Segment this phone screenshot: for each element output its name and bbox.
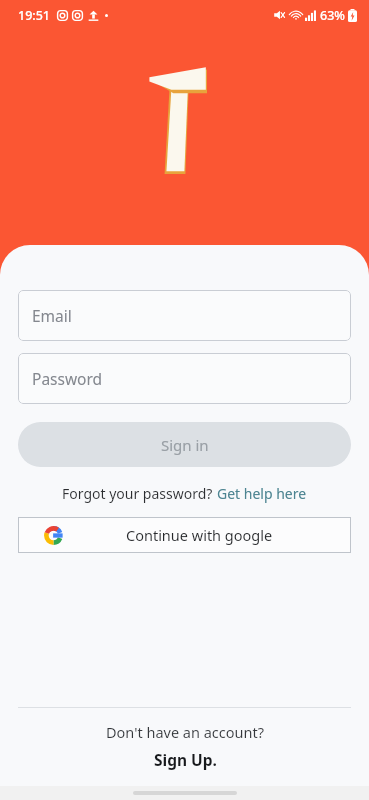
staticText: Password [32,368,103,389]
staticText: Get help here [217,484,307,503]
button[interactable]: Continue with google [18,517,351,553]
staticText: 63% [320,7,345,24]
button[interactable]: Sign in [18,422,351,467]
button[interactable]: Don't have an account? [18,722,351,770]
staticText: Sign Up. [154,749,217,770]
staticText: 19:51 [18,7,51,24]
button[interactable]: Email [18,290,351,341]
staticText: Forgot your password? [62,484,217,503]
staticText: Don't have an account? [106,722,264,742]
staticText: Continue with google [126,525,273,545]
button[interactable]: Password [18,353,351,404]
staticText: Sign in [161,435,209,455]
button[interactable]: Get help here [217,484,307,503]
staticText: Email [32,305,72,326]
